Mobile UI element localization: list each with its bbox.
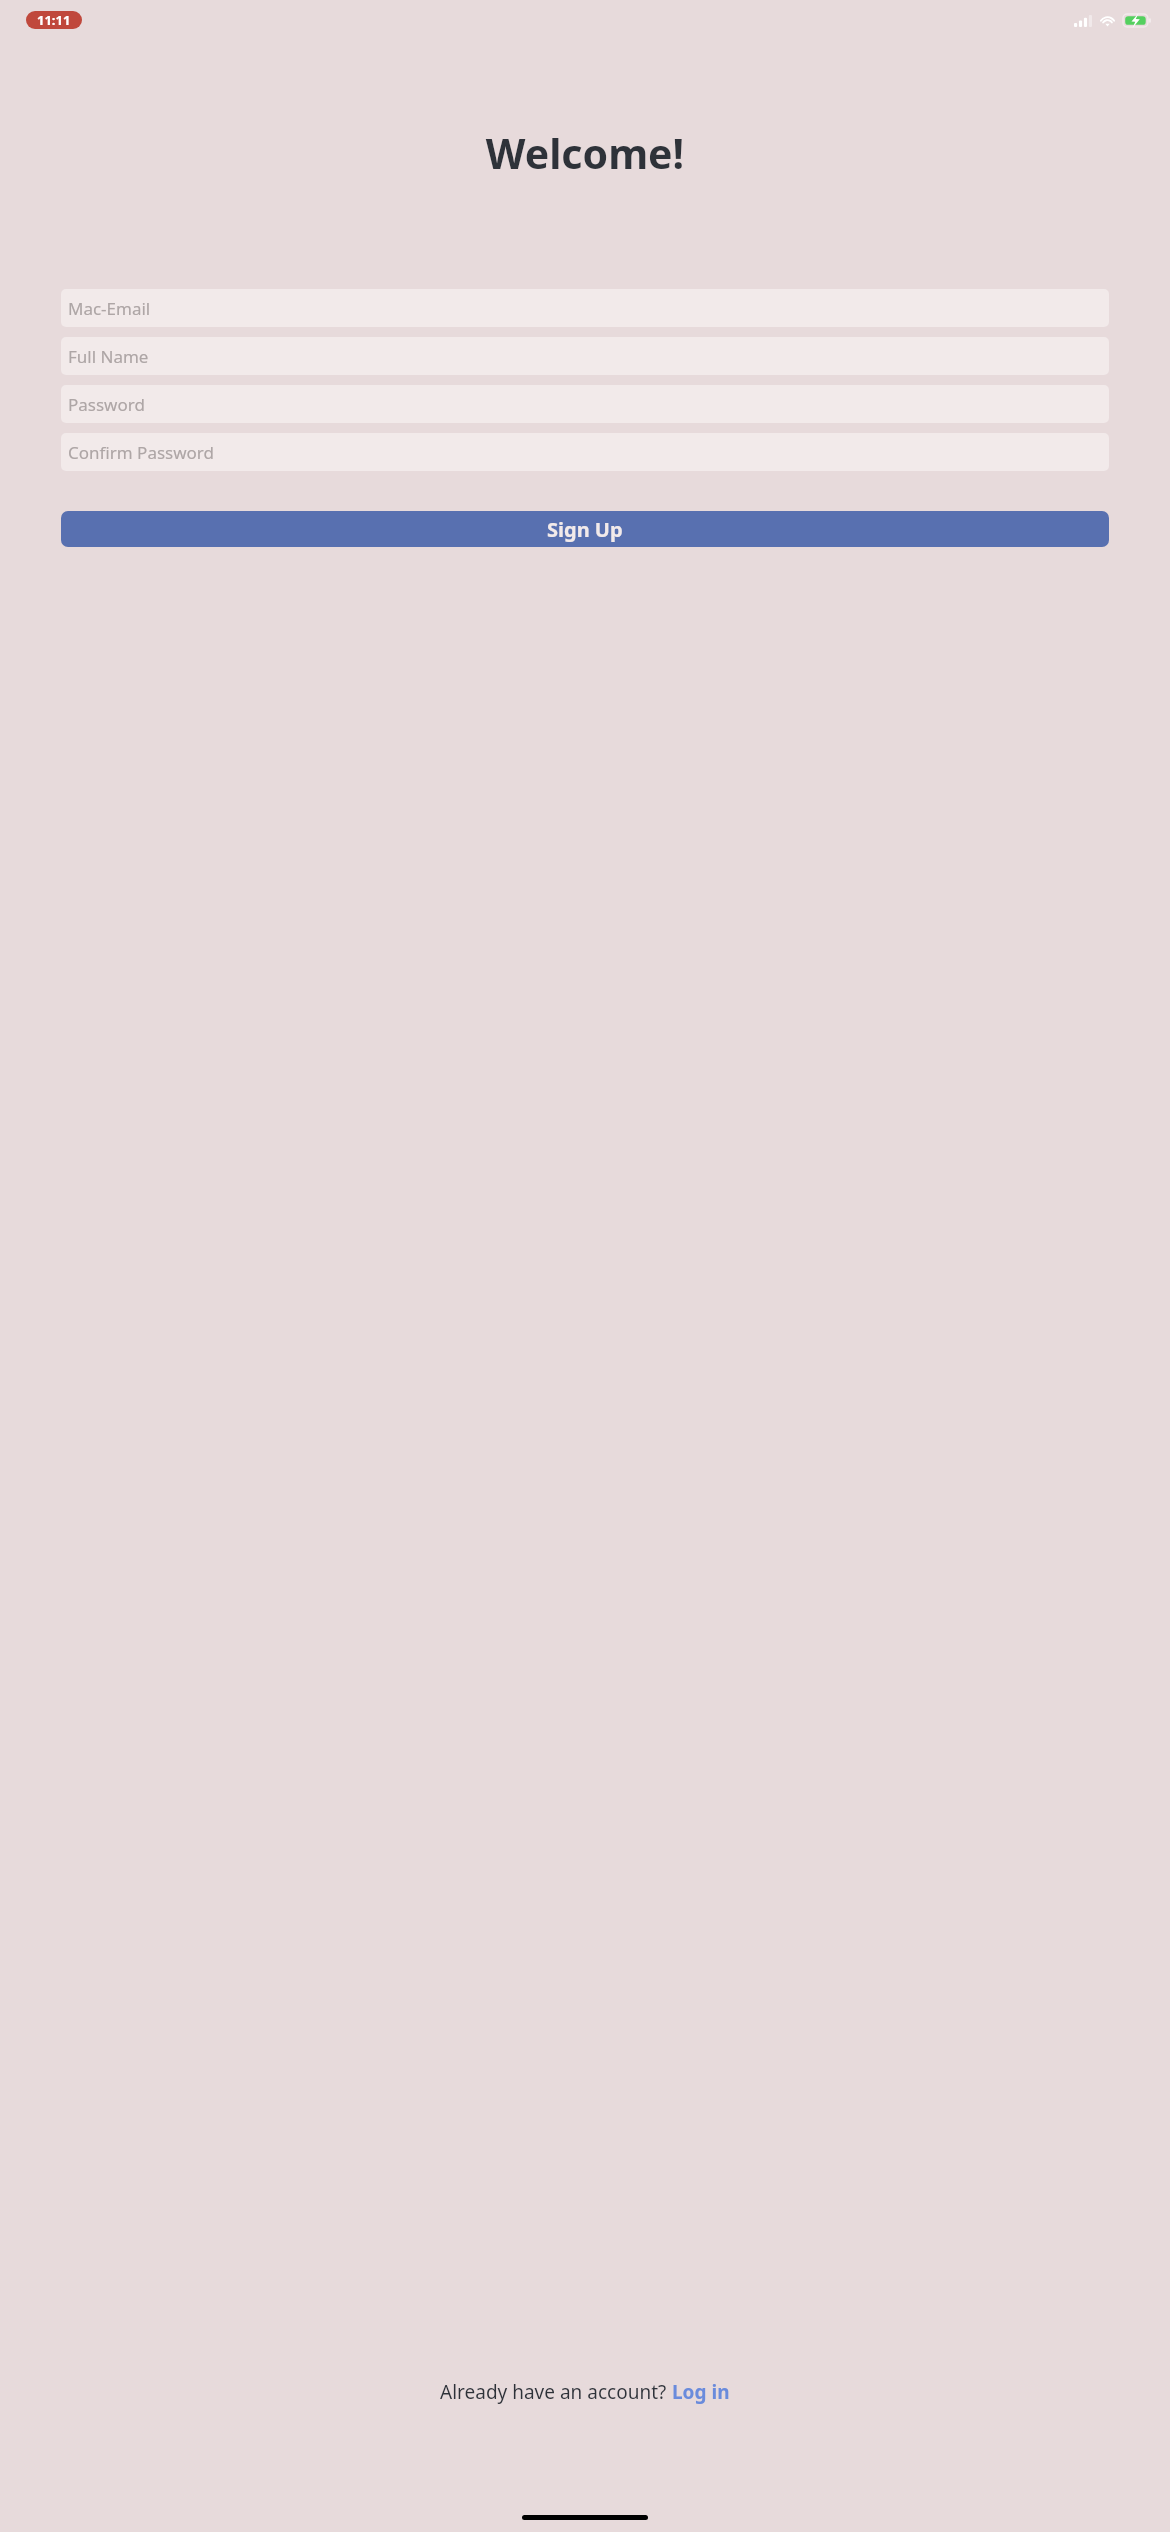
button[interactable]: Mac-Email [61,289,1109,327]
button[interactable]: Log in [672,2379,730,2405]
staticText: Welcome! [0,125,1170,181]
button[interactable]: Sign Up [61,511,1109,547]
staticText: Sign Up [547,516,623,543]
staticText: Full Name [68,345,149,368]
staticText: Log in [672,2379,730,2405]
button[interactable]: Full Name [61,337,1109,375]
staticText: 11:11 [37,11,71,29]
button[interactable]: Confirm Password [61,433,1109,471]
staticText: Confirm Password [68,441,214,464]
button[interactable]: Password [61,385,1109,423]
staticText: Mac-Email [68,297,151,320]
staticText: Already have an account? [440,2379,672,2405]
staticText: Password [68,393,145,416]
